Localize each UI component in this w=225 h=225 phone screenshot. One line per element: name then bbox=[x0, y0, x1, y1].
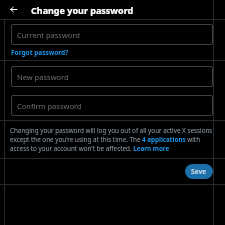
staticText: Forgot password? bbox=[11, 48, 69, 57]
staticText: Confirm password bbox=[17, 101, 82, 111]
button[interactable]: Back bbox=[7, 3, 20, 16]
button[interactable]: Save bbox=[185, 164, 213, 179]
staticText: Current password bbox=[17, 30, 80, 40]
staticText: New password bbox=[17, 72, 69, 82]
button[interactable]: Current password bbox=[11, 24, 213, 45]
button[interactable]: Confirm password bbox=[11, 95, 213, 116]
staticText: Changing your password will log you out … bbox=[10, 126, 216, 153]
button[interactable]: Forgot password? bbox=[11, 48, 69, 57]
button[interactable]: New password bbox=[11, 66, 213, 87]
staticText: Change your password bbox=[31, 4, 134, 16]
staticText: Save bbox=[191, 167, 207, 176]
